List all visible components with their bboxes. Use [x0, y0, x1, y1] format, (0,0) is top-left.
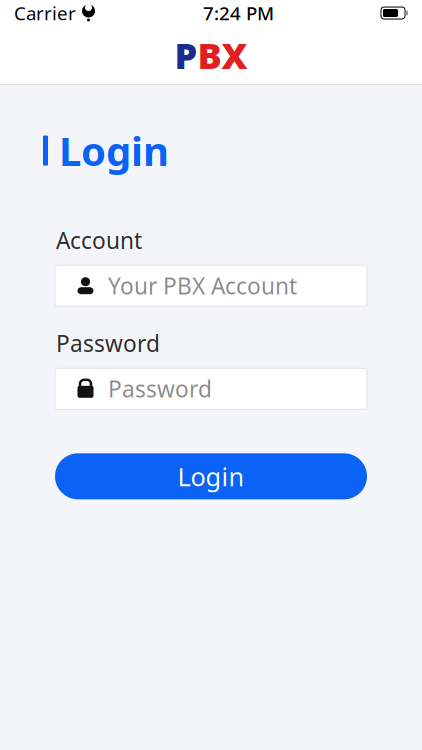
staticText: Your PBX Account — [108, 271, 297, 301]
staticText: Password — [56, 328, 160, 358]
button[interactable]: Login — [55, 453, 367, 499]
staticText: 7:24 PM — [203, 1, 274, 25]
staticText: Account — [56, 225, 142, 255]
button[interactable]: Password — [55, 368, 367, 409]
staticText: B — [197, 31, 221, 79]
staticText: Password — [108, 374, 212, 404]
button[interactable]: Your PBX Account — [55, 265, 367, 306]
staticText: Carrier — [14, 1, 76, 25]
staticText: P — [174, 31, 197, 79]
staticText: X — [221, 31, 247, 79]
staticText: Login — [177, 459, 244, 493]
staticText: Login — [59, 124, 169, 177]
